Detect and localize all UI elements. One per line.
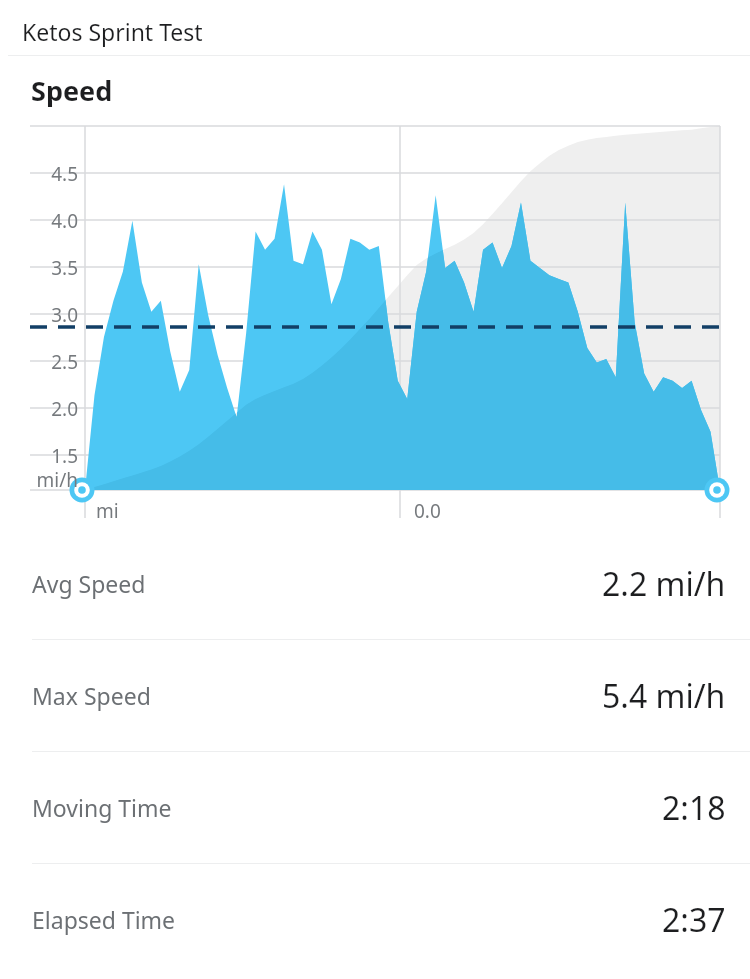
staticText: Elapsed Time xyxy=(32,904,176,935)
button[interactable]: Avg Speed xyxy=(0,528,750,639)
staticText: mi xyxy=(96,498,119,524)
staticText: 2.0 xyxy=(30,396,78,422)
staticText: 2:18 xyxy=(662,786,726,830)
staticText: 2.5 xyxy=(30,349,78,375)
staticText: 3.0 xyxy=(30,302,78,328)
staticText: Speed xyxy=(31,72,113,109)
staticText: Ketos Sprint Test xyxy=(22,16,203,47)
staticText: Moving Time xyxy=(32,792,172,823)
staticText: 5.4 mi/h xyxy=(602,674,726,718)
staticText: 4.0 xyxy=(30,208,78,234)
staticText: 2.2 mi/h xyxy=(602,562,726,606)
staticText: 2:37 xyxy=(662,898,726,942)
staticText: 0.0 xyxy=(414,498,441,524)
button[interactable]: Moving Time xyxy=(0,751,750,863)
staticText: 4.5 xyxy=(30,161,78,187)
button[interactable]: Max Speed xyxy=(0,639,750,751)
staticText: Avg Speed xyxy=(32,568,146,599)
staticText: Max Speed xyxy=(32,680,151,711)
button[interactable]: Elapsed Time xyxy=(0,863,750,975)
staticText: mi/h xyxy=(24,467,78,493)
staticText: 3.5 xyxy=(30,255,78,281)
other: Speed over distance chart xyxy=(0,123,750,528)
staticText: 1.5 xyxy=(30,443,78,469)
